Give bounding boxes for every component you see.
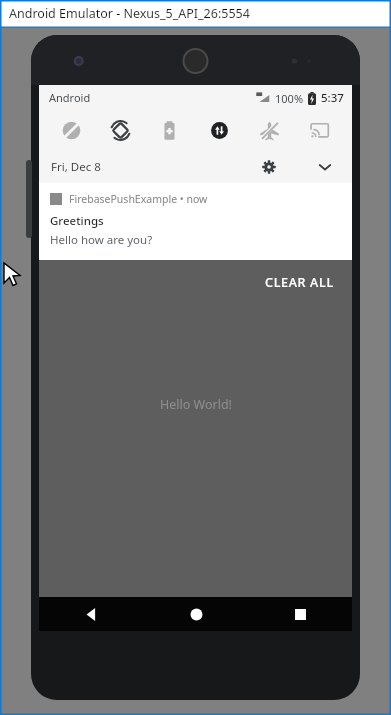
button[interactable]: CLEAR ALL — [247, 260, 352, 305]
staticText: Android Emulator - Nexus_5_API_26:5554 — [9, 5, 250, 22]
staticText: Greetings — [50, 213, 104, 229]
button[interactable]: Expand — [312, 154, 338, 180]
button[interactable]: Wi-Fi off — [47, 110, 96, 150]
button[interactable]: Mobile data — [194, 110, 244, 150]
staticText: FirebasePushExample • now — [69, 192, 208, 206]
staticText: 5:37 — [321, 90, 344, 106]
button[interactable]: Recents — [248, 597, 352, 631]
staticText: 100% — [275, 91, 304, 106]
button[interactable]: Back — [39, 597, 144, 631]
staticText: Hello World! — [160, 396, 232, 413]
button[interactable]: Cast — [294, 110, 344, 150]
staticText: CLEAR ALL — [265, 274, 334, 291]
button[interactable]: FirebasePushExample • now — [39, 183, 352, 260]
staticText: Hello how are you? — [50, 232, 153, 248]
staticText: Android — [49, 90, 91, 105]
button[interactable]: Battery saver — [145, 110, 194, 150]
staticText: Fri, Dec 8 — [51, 159, 101, 175]
button[interactable]: Settings — [256, 154, 282, 180]
button[interactable]: Home — [144, 597, 248, 631]
button[interactable]: Auto rotate — [96, 110, 145, 150]
button[interactable]: Airplane mode — [244, 110, 294, 150]
